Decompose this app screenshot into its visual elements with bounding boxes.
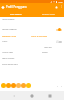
button[interactable]: Pilih warna [21,83,26,88]
button[interactable]: Berikutnya [59,84,63,88]
button[interactable]: More options [59,4,64,9]
staticText: Syarat & Ketentuan [31,35,48,37]
staticText: Tidak aktif [44,46,52,48]
staticText: Kebijakan Privasi [2,35,17,37]
staticText: Nama Lengkap [2,18,15,20]
button[interactable]: Home [28,92,36,100]
staticText: Ukuran Teks [2,51,13,54]
button[interactable]: Tema Aplikasi [0,55,64,61]
button[interactable]: Navigate back [0,4,6,10]
button[interactable]: Pilih warna [11,83,16,88]
button[interactable]: Tidak aktif [0,45,64,49]
staticText: Tema Aplikasi [2,57,15,60]
button[interactable]: Ukuran Teks [0,49,64,55]
staticText: Sedang [42,51,48,53]
button[interactable]: Sebelumnya [55,84,59,88]
button[interactable]: Alarm [0,38,64,45]
button[interactable]: Pilih warna [26,83,31,88]
staticText: Pilihan warna tema [2,63,18,65]
button[interactable]: Recent apps [46,92,54,100]
button[interactable]: RIWAYAT MEDIS [32,10,64,17]
button[interactable]: Back [10,92,18,100]
button[interactable]: Kebijakan Privasi [2,35,17,37]
button[interactable]: Pilih warna [16,83,21,88]
staticText: Alarm [2,40,8,43]
staticText: RIWAYAT MEDIS [42,13,55,15]
button[interactable]: DATA PRIBADI [0,10,32,17]
staticText: Profil Pengguna [6,5,27,9]
button[interactable]: Terima notifikasi [0,26,64,33]
button[interactable]: Pilih warna [1,83,6,88]
staticText: 14:22 [58,1,63,3]
button[interactable]: Syarat & Ketentuan [31,35,48,37]
button[interactable]: Notifications [53,4,59,10]
staticText: Terima notifikasi [2,28,17,31]
button[interactable]: Pilih warna [6,83,11,88]
staticText: DATA PRIBADI [10,13,22,15]
